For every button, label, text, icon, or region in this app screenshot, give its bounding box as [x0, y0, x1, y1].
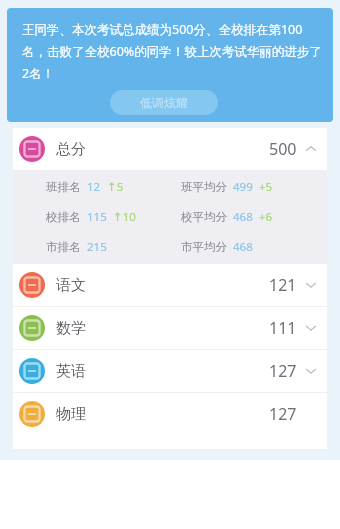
staticText: 127	[269, 360, 297, 382]
button[interactable]: 英语	[13, 350, 327, 392]
staticText: 468	[233, 239, 253, 255]
button[interactable]: 低调炫耀	[110, 90, 218, 115]
staticText: 班平均分	[181, 180, 227, 194]
staticText: 语文	[56, 276, 86, 295]
staticText: ↑10	[113, 209, 136, 225]
staticText: 总分	[56, 140, 86, 159]
staticText: 127	[269, 403, 297, 425]
button[interactable]: 数学	[13, 307, 327, 349]
staticText: 物理	[56, 405, 86, 424]
staticText: 12	[87, 179, 101, 195]
button[interactable]: 语文	[13, 264, 327, 306]
staticText: 500	[269, 138, 297, 160]
staticText: 468	[233, 209, 253, 225]
staticText: 215	[87, 239, 107, 255]
staticText: 115	[87, 209, 107, 225]
staticText: 校排名	[46, 210, 81, 224]
staticText: 王同学、本次考试总成绩为500分、全校排在第100名，击败了全校60%的同学！较…	[22, 21, 323, 82]
staticText: +5	[259, 179, 273, 195]
staticText: 班排名	[46, 180, 81, 194]
staticText: 市平均分	[181, 240, 227, 254]
staticText: 校平均分	[181, 210, 227, 224]
staticText: 低调炫耀	[140, 95, 188, 110]
staticText: 121	[269, 274, 297, 296]
staticText: ↑5	[107, 179, 124, 195]
staticText: 英语	[56, 362, 86, 381]
button[interactable]: 总分	[13, 128, 327, 170]
button[interactable]: 物理	[13, 393, 327, 435]
staticText: 数学	[56, 319, 86, 338]
staticText: 499	[233, 179, 253, 195]
staticText: +6	[259, 209, 273, 225]
staticText: 市排名	[46, 240, 81, 254]
staticText: 111	[269, 317, 297, 339]
